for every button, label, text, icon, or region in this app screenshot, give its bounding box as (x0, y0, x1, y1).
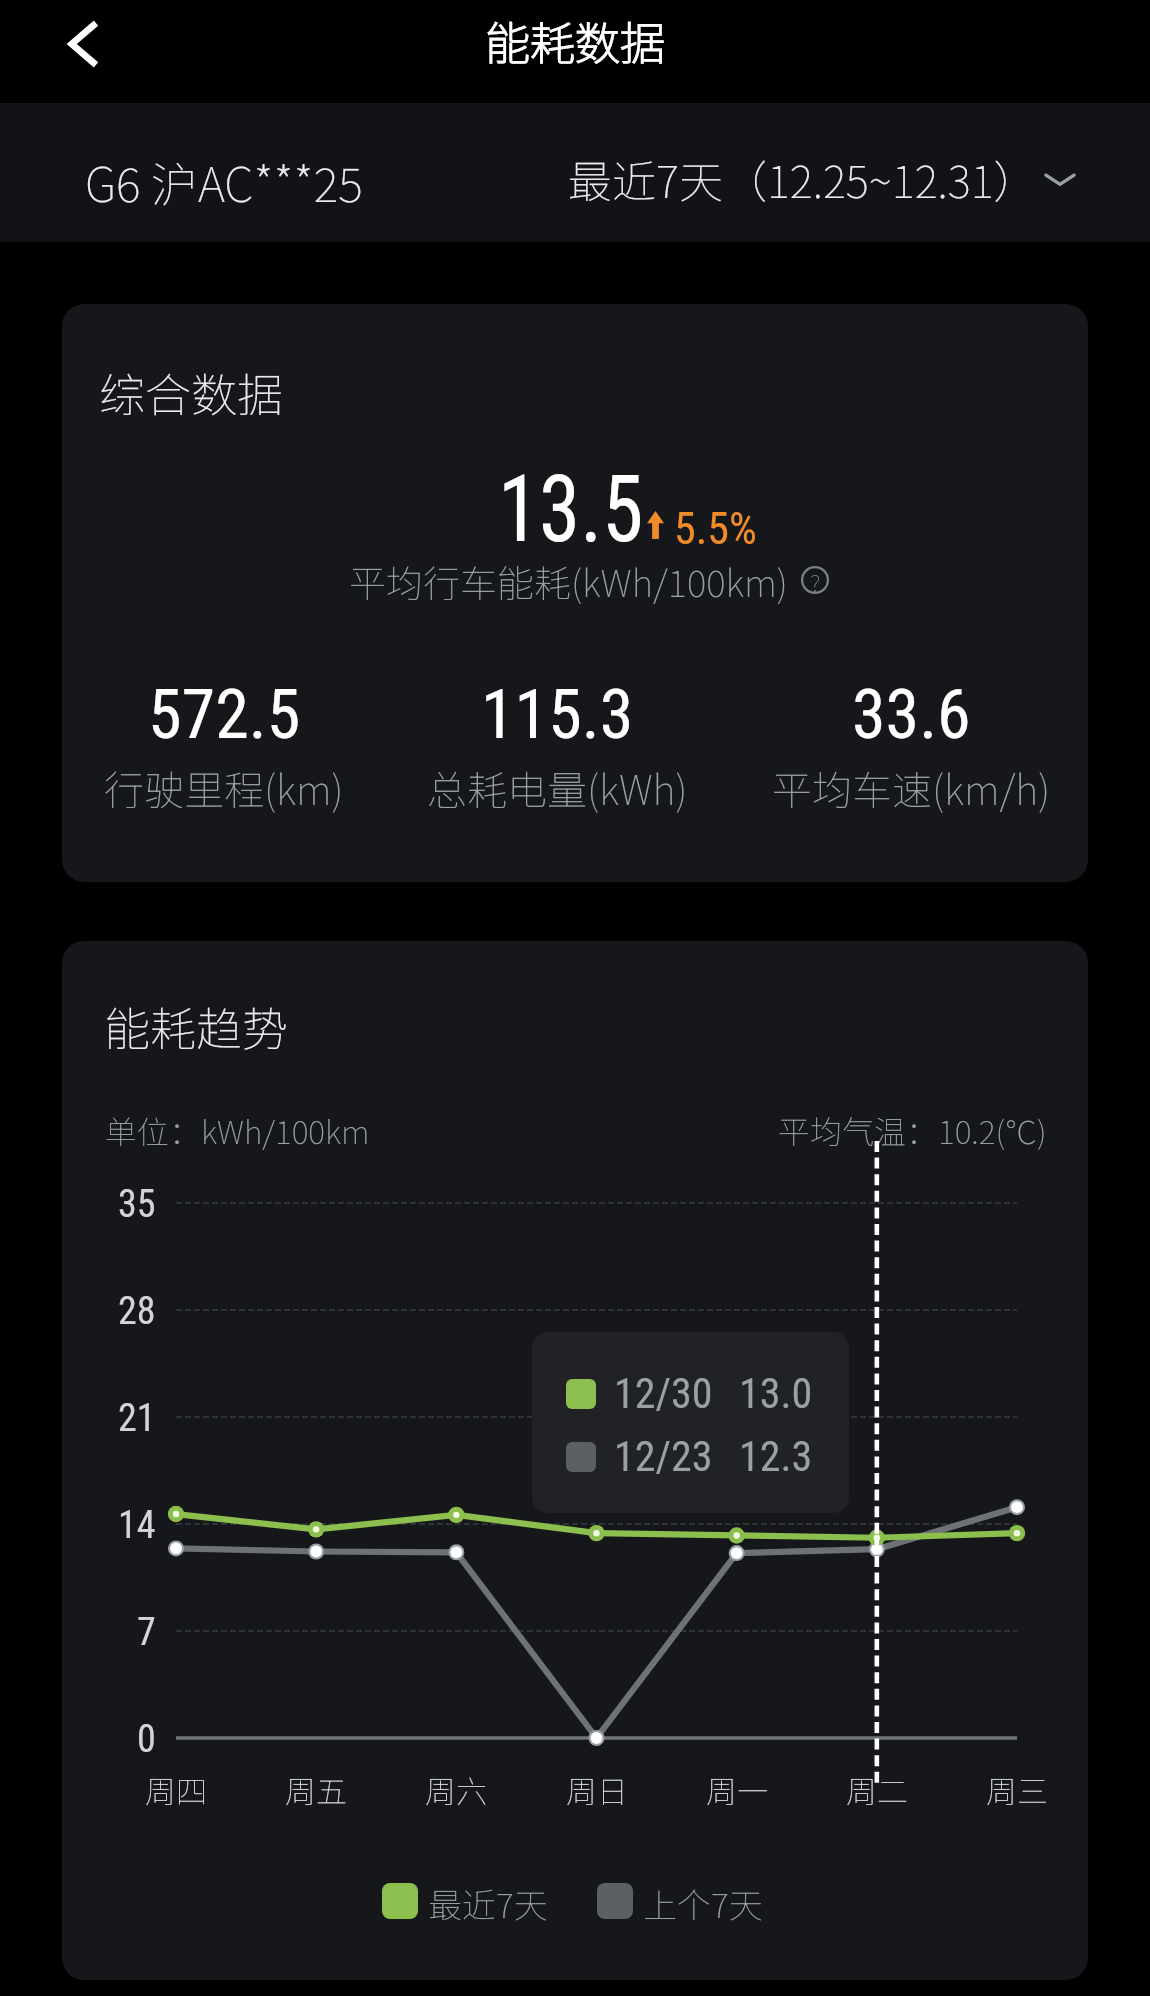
button[interactable]: 最近7天（12.25~12.31） (568, 147, 1082, 211)
staticText: 行驶里程(km) (104, 759, 344, 817)
button[interactable]: 能耗趋势 (62, 941, 1088, 1980)
staticText: 14 (118, 1503, 156, 1548)
staticText: 总耗电量(kWh) (427, 759, 688, 817)
button[interactable]: Back (47, 6, 123, 82)
staticText: 能耗趋势 (104, 993, 288, 1060)
staticText: 115.3 (481, 675, 634, 755)
staticText: 平均车速(km/h) (772, 759, 1051, 817)
staticText: 最近7天（12.25~12.31） (568, 147, 1038, 211)
staticText: 周一 (706, 1767, 768, 1812)
staticText: 周五 (285, 1767, 347, 1812)
staticText: 周六 (425, 1767, 487, 1812)
staticText: 周四 (145, 1767, 207, 1812)
staticText: 0 (137, 1717, 156, 1762)
staticText: 单位：kWh/100km (105, 1107, 370, 1153)
staticText: ? (810, 564, 821, 594)
button[interactable]: 上个7天 (597, 1879, 763, 1928)
staticText: G6 沪AC***25 (85, 147, 363, 215)
staticText: 12/23 (614, 1432, 713, 1481)
staticText: 能耗数据 (485, 8, 666, 73)
staticText: 周二 (846, 1767, 908, 1812)
staticText: 5.5% (674, 503, 757, 555)
staticText: 572.5 (148, 675, 301, 755)
staticText: 周三 (986, 1767, 1048, 1812)
staticText: 28 (118, 1289, 156, 1334)
staticText: 上个7天 (643, 1879, 763, 1928)
staticText: 最近7天 (428, 1879, 548, 1928)
staticText: 33.6 (852, 675, 971, 755)
staticText: 平均行车能耗(kWh/100km) (349, 554, 788, 608)
button[interactable]: 说明 (800, 565, 830, 595)
button[interactable]: 最近7天 (382, 1879, 548, 1928)
staticText: 12/30 (614, 1369, 713, 1418)
staticText: 13.5 (498, 456, 644, 564)
staticText: 12.3 (739, 1432, 813, 1481)
staticText: 13.0 (739, 1369, 813, 1418)
staticText: 21 (118, 1396, 156, 1441)
staticText: 平均气温：10.2(℃) (778, 1107, 1047, 1153)
staticText: 周日 (566, 1767, 628, 1812)
staticText: 35 (118, 1182, 156, 1227)
staticText: 综合数据 (99, 359, 283, 426)
button[interactable]: 综合数据 (62, 304, 1088, 882)
staticText: 7 (137, 1610, 156, 1655)
